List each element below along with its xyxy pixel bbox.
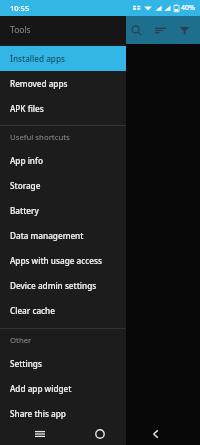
- staticText: App info: [10, 155, 43, 166]
- button[interactable]: Removed apps: [0, 71, 126, 96]
- staticText: Clear cache: [10, 305, 55, 316]
- staticText: 10:55: [10, 3, 30, 13]
- staticText: Useful shortcuts: [10, 132, 70, 143]
- staticText: Installed apps: [10, 53, 65, 64]
- staticText: Storage: [10, 180, 41, 191]
- button[interactable]: Recents: [28, 423, 52, 445]
- staticText: Apps with usage access: [10, 255, 102, 266]
- button[interactable]: Home: [88, 423, 112, 445]
- staticText: Battery: [10, 205, 39, 216]
- button[interactable]: Back: [144, 423, 168, 445]
- staticText: Settings: [10, 358, 42, 369]
- button[interactable]: Settings: [0, 351, 126, 376]
- button[interactable]: Add app widget: [0, 376, 126, 401]
- staticText: Add app widget: [10, 383, 72, 394]
- button[interactable]: Search: [124, 18, 148, 42]
- button[interactable]: Filter: [172, 18, 196, 42]
- staticText: APK files: [10, 103, 44, 114]
- staticText: Tools: [10, 24, 31, 36]
- staticText: Removed apps: [10, 78, 68, 89]
- staticText: 40%: [181, 3, 195, 13]
- button[interactable]: Battery: [0, 198, 126, 223]
- button[interactable]: Device admin settings: [0, 273, 126, 298]
- button[interactable]: Sort: [148, 18, 172, 42]
- button[interactable]: App info: [0, 148, 126, 173]
- button[interactable]: Installed apps: [0, 46, 126, 71]
- staticText: Device admin settings: [10, 280, 97, 291]
- button[interactable]: APK files: [0, 96, 126, 121]
- button[interactable]: Clear cache: [0, 298, 126, 323]
- button[interactable]: Share this app: [0, 401, 126, 426]
- button[interactable]: Apps with usage access: [0, 248, 126, 273]
- button[interactable]: Tools: [0, 16, 126, 44]
- staticText: Data management: [10, 230, 84, 241]
- staticText: Share this app: [10, 408, 66, 419]
- staticText: Other: [10, 335, 32, 346]
- button[interactable]: Storage: [0, 173, 126, 198]
- button[interactable]: Data management: [0, 223, 126, 248]
